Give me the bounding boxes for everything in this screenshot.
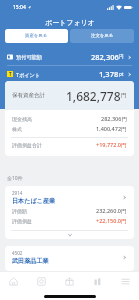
staticText: +22,150.0円 <box>96 217 127 225</box>
staticText: 1,400,472円 <box>96 125 127 133</box>
staticText: 武田薬品工業 <box>12 257 49 265</box>
button[interactable]: 2914 <box>5 186 134 239</box>
staticText: 282,306円 <box>101 115 127 123</box>
staticText: 評価損益 <box>12 218 32 224</box>
button[interactable]: Wallet <box>27 272 55 291</box>
staticText: 4502 <box>12 250 23 256</box>
button[interactable]: Menu <box>111 272 139 291</box>
staticText: 282,306 <box>91 52 119 62</box>
staticText: Tポイント <box>16 71 41 78</box>
button[interactable]: 注文を見る <box>70 29 134 43</box>
button[interactable]: 預付可能額 <box>7 49 132 65</box>
staticText: 保有資産合計 <box>12 92 45 99</box>
staticText: 1,682,778 <box>66 88 121 104</box>
staticText: 全10件 <box>7 175 23 182</box>
staticText: +19,772.0円 <box>96 141 127 149</box>
staticText: T <box>9 71 12 77</box>
staticText: 日本たばこ産業 <box>12 197 56 205</box>
staticText: 現金残高 <box>12 116 32 122</box>
button[interactable]: Products <box>55 272 83 291</box>
staticText: 円 <box>119 54 124 60</box>
staticText: 評価額 <box>12 208 27 214</box>
staticText: 預付可能額 <box>16 54 42 61</box>
staticText: 15:04 <box>13 4 26 11</box>
staticText: 注文を見る <box>91 33 114 39</box>
staticText: 1,378 <box>99 69 119 79</box>
staticText: 資産を見る <box>25 33 48 39</box>
staticText: 232,260.0円 <box>96 207 127 215</box>
staticText: 株式 <box>12 126 22 132</box>
staticText: pt <box>119 71 124 77</box>
button[interactable]: T <box>7 66 132 82</box>
staticText: 2914 <box>12 190 23 196</box>
button[interactable]: 4502 <box>5 246 134 271</box>
button[interactable]: Chart <box>83 272 111 291</box>
button[interactable]: Home <box>0 272 27 291</box>
staticText: 評価損益合計 <box>12 142 42 148</box>
button[interactable]: 資産を見る <box>5 29 68 43</box>
staticText: 円 <box>121 92 127 99</box>
staticText: ポートフォリオ <box>45 18 95 27</box>
